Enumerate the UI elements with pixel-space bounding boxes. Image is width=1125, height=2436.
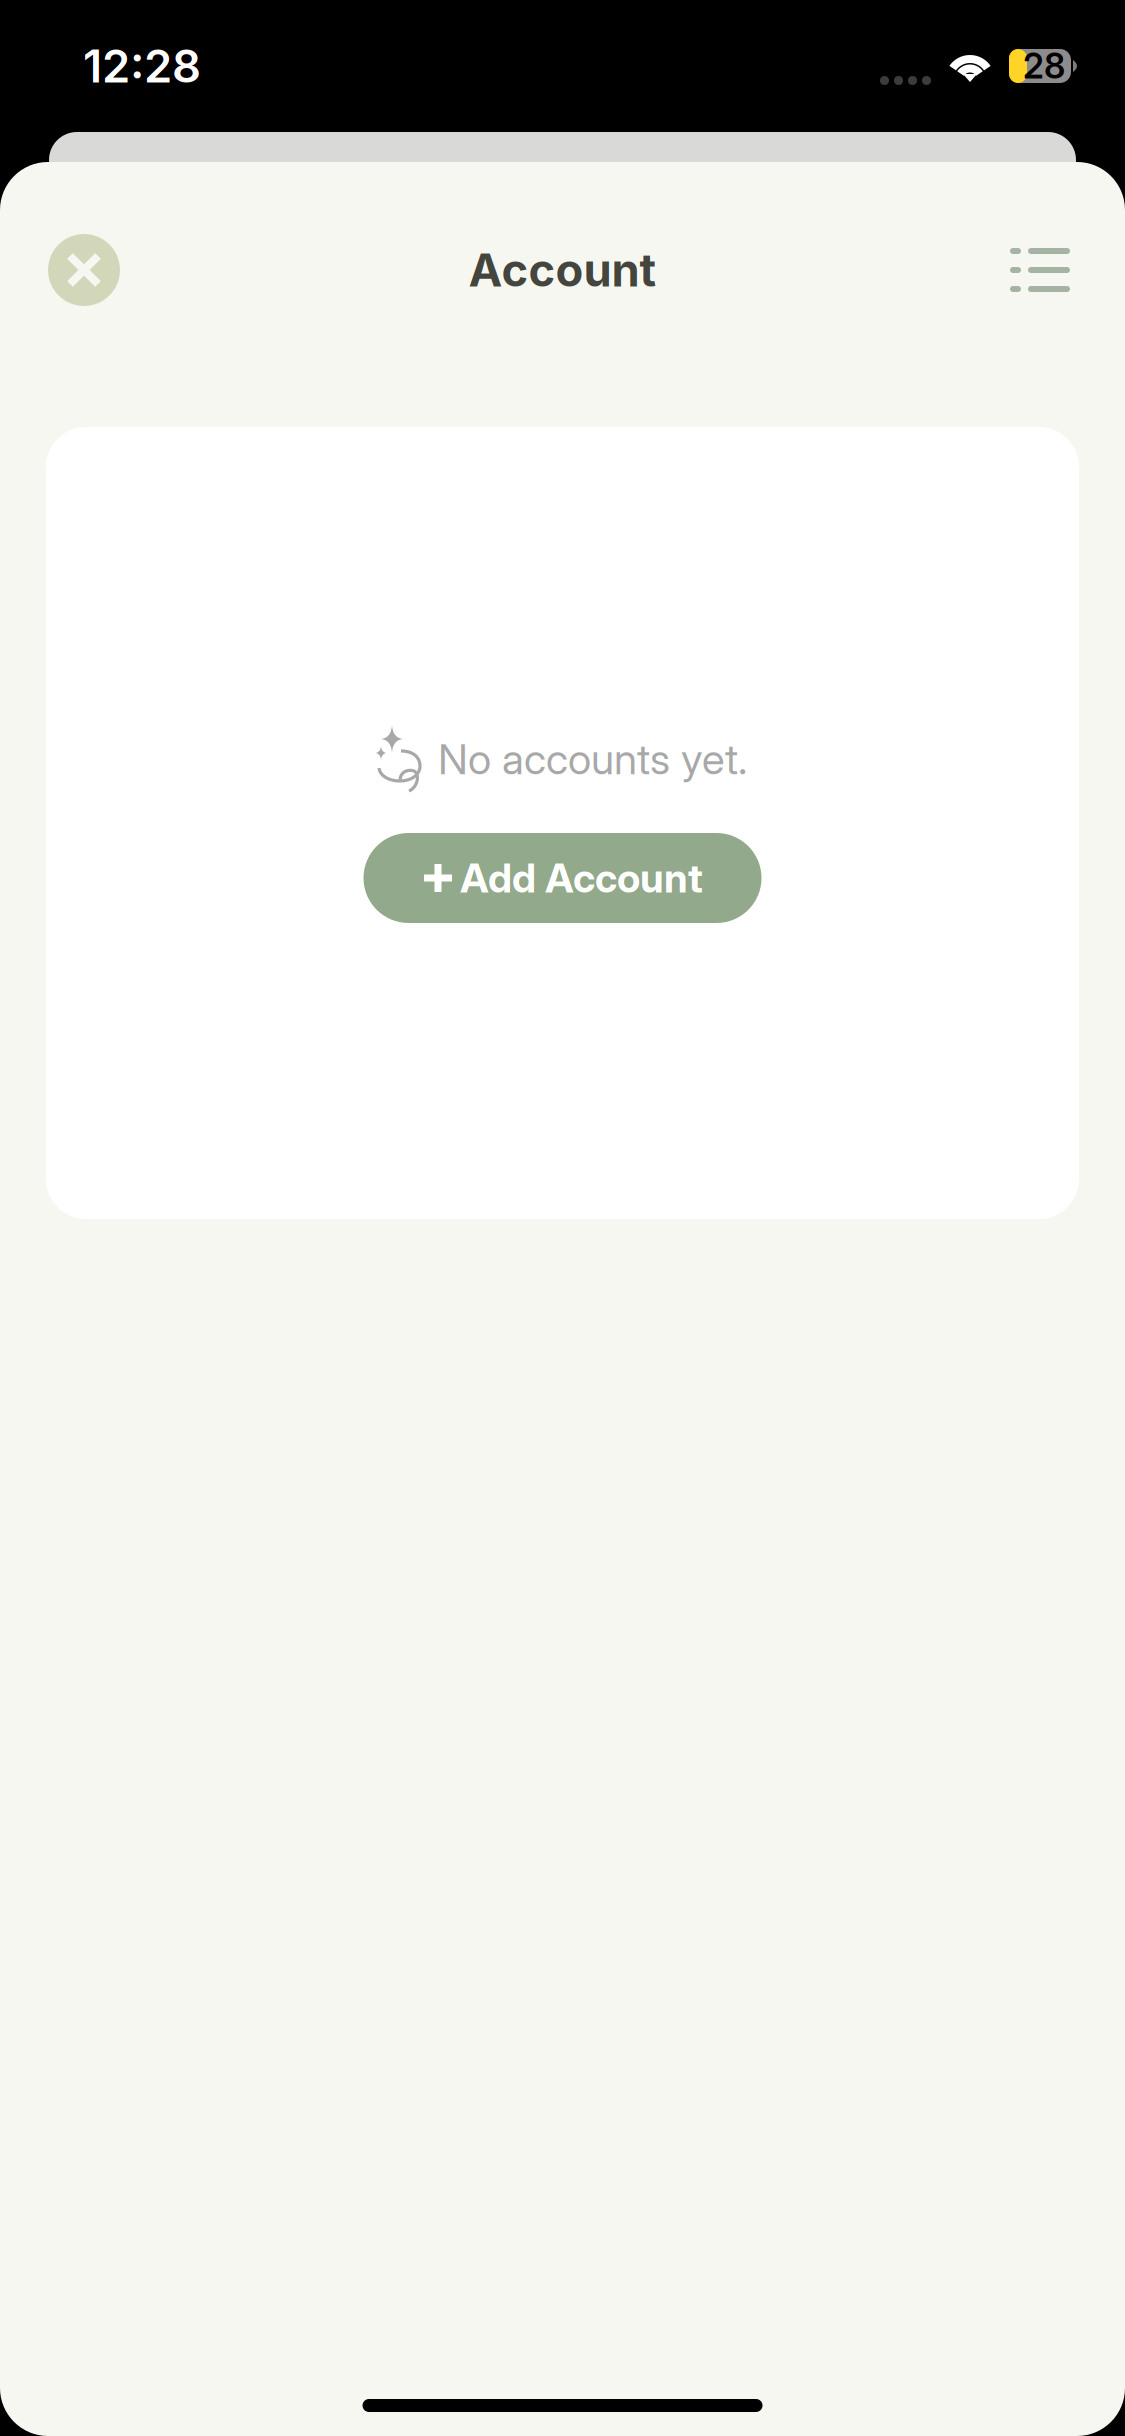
staticText: Add Account xyxy=(460,854,703,902)
staticText: 12:28 xyxy=(83,39,201,93)
button[interactable]: List options xyxy=(998,228,1082,312)
button[interactable]: Close xyxy=(48,234,120,306)
staticText: Account xyxy=(468,243,656,297)
staticText: No accounts yet. xyxy=(438,734,747,784)
button[interactable]: Add Account xyxy=(363,833,761,923)
staticText: 28 xyxy=(1023,45,1065,87)
